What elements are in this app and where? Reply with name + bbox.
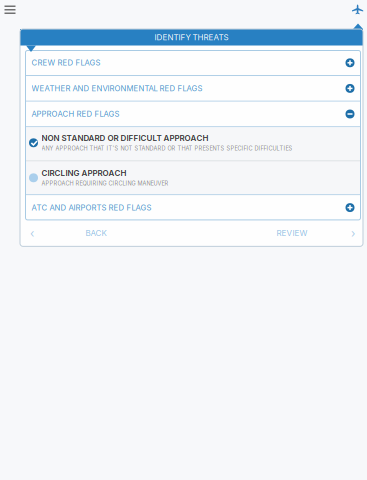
staticText: CREW RED FLAGS bbox=[31, 58, 100, 67]
staticText: ATC AND AIRPORTS RED FLAGS bbox=[31, 203, 151, 212]
button[interactable]: ATC AND AIRPORTS RED FLAGS bbox=[25, 195, 360, 220]
staticText: APPROACH RED FLAGS bbox=[31, 109, 119, 119]
button[interactable]: WEATHER AND ENVIRONMENTAL RED FLAGS bbox=[25, 76, 360, 101]
staticText: APPROACH REQUIRING CIRCLING MANEUVER bbox=[41, 180, 168, 187]
staticText: CIRCLING APPROACH bbox=[41, 168, 126, 178]
staticText: › bbox=[351, 226, 355, 240]
button[interactable]: Menu bbox=[0, 0, 21, 19]
button[interactable]: CREW RED FLAGS bbox=[25, 50, 360, 75]
button[interactable]: NON STANDARD OR DIFFICULT APPROACH bbox=[25, 126, 360, 160]
button[interactable]: APPROACH RED FLAGS bbox=[25, 102, 360, 126]
staticText: BACK bbox=[85, 228, 106, 238]
staticText: REVIEW bbox=[276, 228, 307, 238]
staticText: WEATHER AND ENVIRONMENTAL RED FLAGS bbox=[31, 84, 202, 93]
button[interactable]: REVIEW bbox=[192, 221, 363, 246]
button[interactable]: CIRCLING APPROACH bbox=[25, 161, 360, 195]
staticText: NON STANDARD OR DIFFICULT APPROACH bbox=[41, 133, 208, 143]
button[interactable]: ‹ bbox=[20, 221, 192, 246]
button[interactable]: Flight bbox=[346, 0, 367, 19]
staticText: ANY APPROACH THAT IT'S NOT STANDARD OR T… bbox=[41, 145, 292, 152]
staticText: ‹ bbox=[30, 226, 34, 240]
staticText: IDENTIFY THREATS bbox=[154, 32, 228, 42]
